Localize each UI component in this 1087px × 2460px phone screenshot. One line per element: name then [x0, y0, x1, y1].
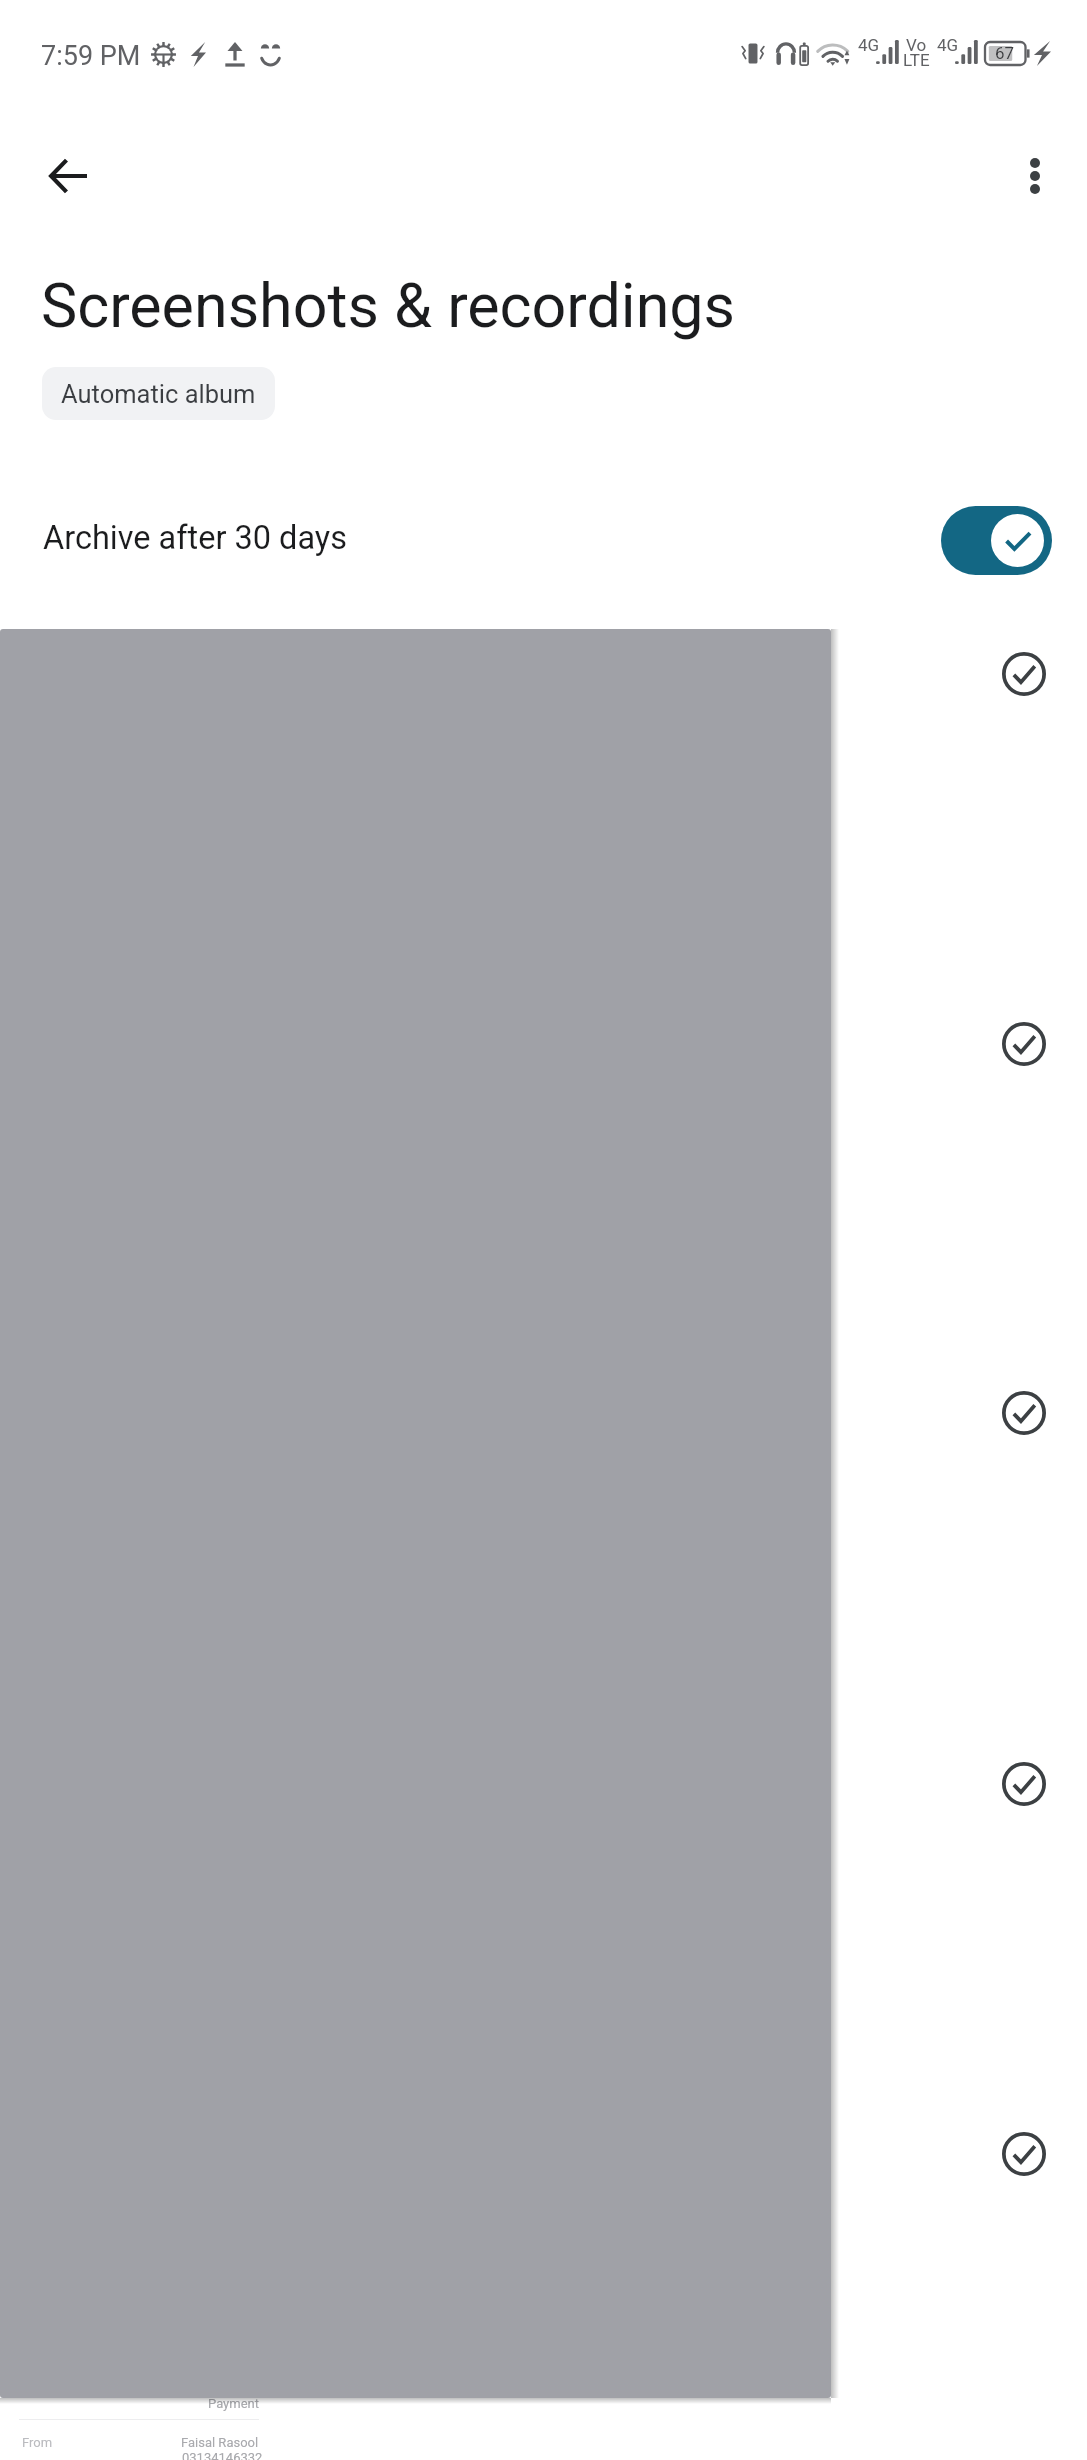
- staticText: Vo: [906, 35, 927, 55]
- staticText: Archive after 30 days: [43, 519, 347, 557]
- staticText: Faisal Rasool: [181, 2435, 259, 2450]
- staticText: From: [22, 2435, 53, 2450]
- staticText: 03134146332: [182, 2450, 263, 2460]
- button[interactable]: Archive after 30 days: [0, 486, 1087, 596]
- staticText: 4G: [937, 35, 959, 55]
- staticText: LTE: [903, 50, 930, 70]
- staticText: 67: [995, 43, 1015, 63]
- staticText: 7:59 PM: [41, 40, 141, 72]
- button[interactable]: Select photo: [994, 644, 1054, 704]
- button[interactable]: Select photo: [994, 2124, 1054, 2184]
- button[interactable]: Screenshot: [0, 2398, 831, 2460]
- staticText: Payment: [208, 2396, 259, 2411]
- button[interactable]: Select photo: [994, 1754, 1054, 1814]
- button[interactable]: Select photo: [994, 1383, 1054, 1443]
- button[interactable]: Automatic album: [42, 367, 275, 420]
- button[interactable]: Archive after 30 days: [941, 506, 1052, 575]
- staticText: Automatic album: [61, 379, 256, 409]
- button[interactable]: Select photo: [994, 1014, 1054, 1074]
- button[interactable]: Back: [20, 128, 116, 224]
- button[interactable]: More options: [987, 128, 1083, 224]
- staticText: Screenshots & recordings: [41, 270, 736, 341]
- staticText: 4G: [858, 35, 880, 55]
